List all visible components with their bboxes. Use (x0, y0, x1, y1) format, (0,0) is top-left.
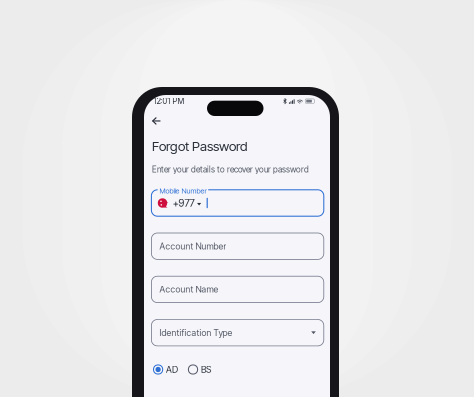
button[interactable]: AD (153, 364, 178, 375)
staticText: Account Name (159, 284, 218, 295)
staticText: Forgot Password (152, 138, 247, 154)
staticText: Identification Type (159, 327, 232, 338)
staticText: +977 (173, 197, 195, 209)
button[interactable]: Identification Type (151, 319, 324, 346)
button[interactable]: +977 (151, 190, 324, 216)
button[interactable]: Account Name (151, 276, 324, 303)
button[interactable]: Back (148, 113, 165, 129)
staticText: AD (166, 364, 178, 375)
staticText: BS (201, 364, 211, 375)
button[interactable]: BS (188, 364, 211, 375)
staticText: 12:01 PM (154, 96, 185, 106)
button[interactable]: Account Number (151, 233, 324, 259)
staticText: Account Number (159, 241, 226, 251)
staticText: Enter your details to recover your passw… (152, 164, 309, 174)
staticText: Mobile Number (159, 186, 206, 195)
